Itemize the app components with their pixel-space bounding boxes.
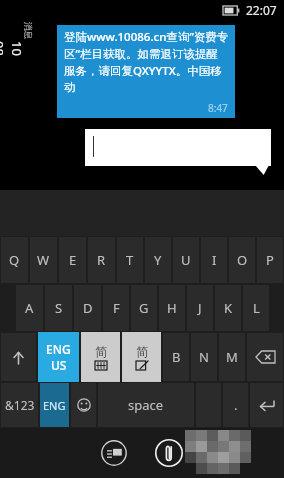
button[interactable]: Emoji (71, 383, 96, 427)
staticText: I (212, 251, 217, 269)
staticText: P (266, 251, 274, 269)
button[interactable]: U (173, 237, 199, 283)
button[interactable]: B (163, 333, 189, 381)
button[interactable]: 简 (122, 332, 161, 382)
staticText: N (199, 348, 209, 366)
button[interactable]: H (159, 285, 185, 331)
staticText: W (37, 251, 50, 269)
staticText: . (234, 396, 238, 414)
button[interactable]: Attach (152, 436, 186, 470)
button[interactable]: E (59, 237, 86, 283)
button[interactable]: D (74, 285, 101, 331)
button[interactable]: F (103, 285, 129, 331)
button[interactable]: R (88, 237, 115, 283)
staticText: 8:47 (208, 101, 228, 115)
staticText: 10086 (0, 41, 26, 63)
button[interactable]: I (201, 237, 227, 283)
button[interactable]: Enter (250, 383, 283, 427)
button[interactable]: T (117, 237, 143, 283)
button[interactable]: Q (1, 237, 28, 283)
button[interactable]: J (187, 285, 213, 331)
staticText: 22:07 (246, 2, 277, 18)
button[interactable]: K (215, 285, 241, 331)
staticText: B (172, 348, 181, 366)
button[interactable]: W (30, 237, 57, 283)
staticText: Y (154, 251, 162, 269)
staticText: H (167, 299, 177, 317)
staticText: O (237, 251, 248, 269)
staticText: T (126, 251, 134, 269)
button[interactable]: P (257, 237, 283, 283)
staticText: S (55, 299, 63, 317)
staticText: E (69, 251, 77, 269)
staticText: J (198, 299, 202, 317)
staticText: M (226, 348, 238, 366)
button[interactable]: . (223, 383, 248, 427)
staticText: L (253, 299, 260, 317)
button[interactable]: ENG (38, 332, 79, 382)
button[interactable]: ENG (40, 383, 69, 427)
button[interactable]: L (243, 285, 269, 331)
staticText: 简 (136, 344, 148, 359)
button[interactable]: O (229, 237, 255, 283)
staticText: U (181, 251, 191, 269)
button[interactable]: space (98, 383, 194, 427)
button[interactable]: Send message (98, 437, 130, 469)
button[interactable]: Y (145, 237, 171, 283)
button[interactable]: &123 (1, 383, 38, 427)
staticText: K (224, 299, 233, 317)
staticText: Q (9, 251, 20, 269)
staticText: G (139, 299, 149, 317)
button[interactable]: 简 (81, 332, 120, 382)
staticText: D (83, 299, 93, 317)
staticText: ENG (43, 398, 66, 413)
staticText: 消息 (22, 21, 33, 39)
button[interactable]: G (131, 285, 157, 331)
staticText: R (97, 251, 106, 269)
button[interactable]: N (191, 333, 217, 381)
button[interactable]: M (219, 333, 245, 381)
staticText: 登陆www.10086.cn查询”资费专区“栏目获取。如需退订该提醒服务，请回复… (64, 29, 229, 94)
staticText: ENG (46, 341, 71, 357)
staticText: F (113, 299, 120, 317)
button[interactable]: Backspace (247, 333, 283, 381)
staticText: US (51, 357, 67, 373)
button[interactable]: Shift (1, 333, 36, 381)
staticText: 简 (95, 344, 107, 359)
staticText: space (128, 396, 164, 414)
button[interactable] (85, 129, 271, 166)
staticText: A (25, 299, 34, 317)
staticText: &123 (5, 397, 35, 413)
button[interactable]: A (16, 285, 43, 331)
button[interactable]: 登陆www.10086.cn查询”资费专区“栏目获取。如需退订该提醒服务，请回复… (57, 25, 235, 118)
button[interactable]: S (45, 285, 72, 331)
